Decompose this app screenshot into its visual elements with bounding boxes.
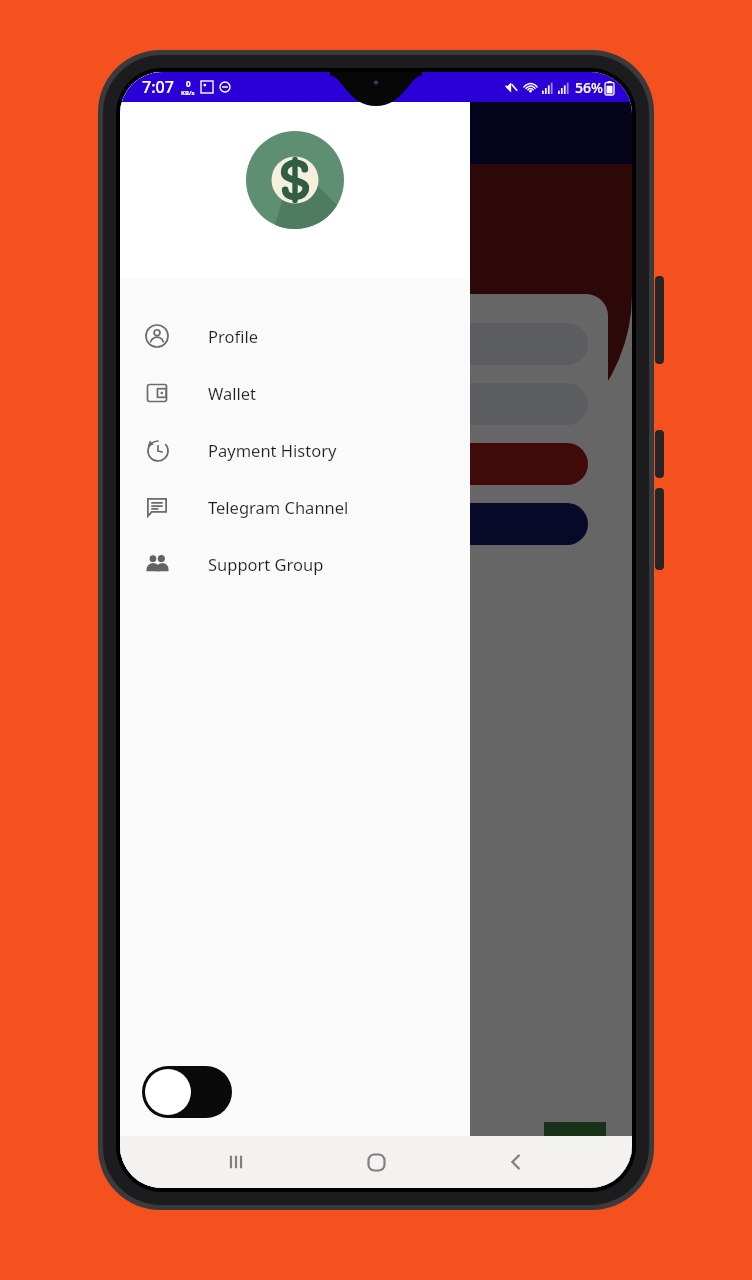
button[interactable]: Payment History bbox=[120, 421, 470, 478]
staticText: Wallet bbox=[208, 382, 257, 404]
staticText: KB/s bbox=[181, 89, 195, 97]
button[interactable]: Theme toggle bbox=[142, 1066, 232, 1118]
staticText: 0 bbox=[186, 78, 191, 89]
staticText: Support Group bbox=[208, 553, 324, 575]
button[interactable]: Recents bbox=[212, 1138, 260, 1186]
button[interactable]: Profile bbox=[120, 307, 470, 364]
staticText: Payment History bbox=[208, 439, 337, 461]
button[interactable]: Home bbox=[352, 1138, 400, 1186]
staticText: 7:07 bbox=[142, 76, 174, 98]
button[interactable]: Telegram Channel bbox=[120, 478, 470, 535]
staticText: 56% bbox=[575, 78, 603, 97]
button[interactable]: Wallet bbox=[120, 364, 470, 421]
staticText: Telegram Channel bbox=[208, 496, 349, 518]
button[interactable]: Next bbox=[544, 1122, 606, 1184]
staticText: Profile bbox=[208, 325, 258, 347]
button[interactable]: Support Group bbox=[120, 535, 470, 592]
button[interactable]: Back bbox=[492, 1138, 540, 1186]
